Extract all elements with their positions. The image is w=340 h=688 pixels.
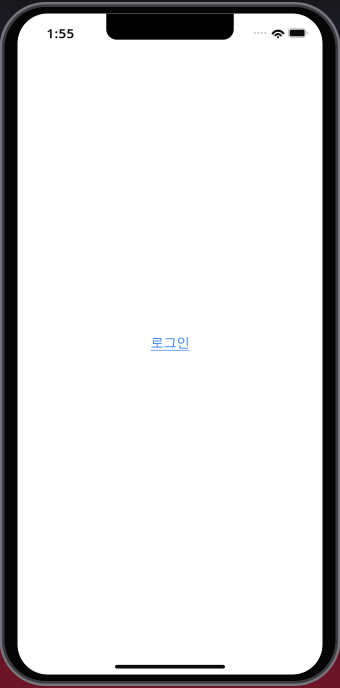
staticText: 1:55: [46, 24, 74, 42]
button[interactable]: 로그인: [150, 334, 189, 351]
staticText: 로그인: [150, 334, 189, 351]
